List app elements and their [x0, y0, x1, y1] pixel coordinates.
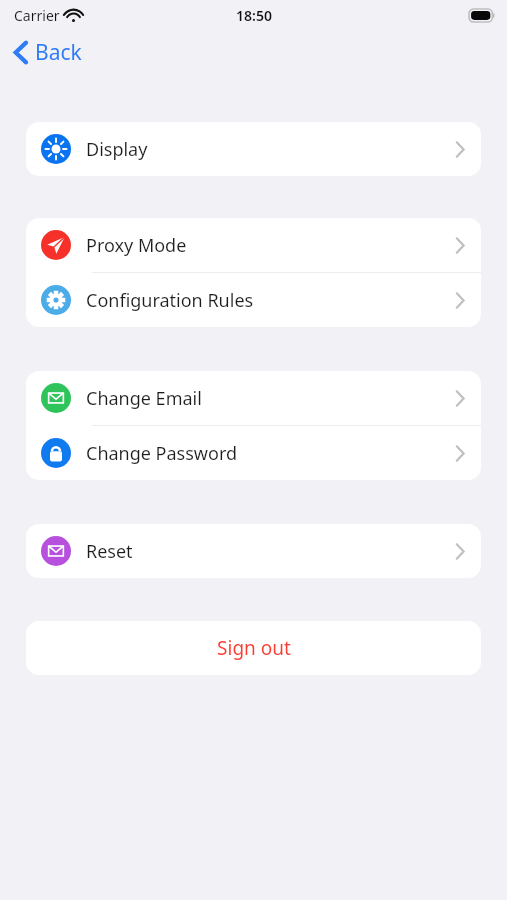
staticText: Change Email [86, 386, 455, 411]
staticText: Change Password [86, 441, 455, 466]
staticText: 18:50 [236, 6, 272, 25]
staticText: Proxy Mode [86, 233, 455, 258]
button[interactable]: Proxy Mode [26, 218, 481, 272]
button[interactable]: Change Password [26, 426, 481, 480]
staticText: Back [35, 38, 82, 67]
other: Display [41, 134, 71, 164]
button[interactable]: Mail [26, 371, 481, 425]
staticText: Reset [86, 539, 455, 564]
button[interactable]: Configuration Rules [26, 273, 481, 327]
button[interactable]: Back [10, 36, 90, 69]
other: Proxy Mode [41, 230, 71, 260]
staticText: Configuration Rules [86, 288, 455, 313]
other: Change Password [41, 438, 71, 468]
button[interactable]: Mail [26, 524, 481, 578]
staticText: Sign out [217, 635, 291, 661]
button[interactable]: Sign out [26, 621, 481, 675]
button[interactable]: Display [26, 122, 481, 176]
other: Mail [41, 383, 71, 413]
staticText: Display [86, 137, 455, 162]
other: Mail [41, 536, 71, 566]
other: Configuration Rules [41, 285, 71, 315]
staticText: Carrier [14, 6, 60, 25]
